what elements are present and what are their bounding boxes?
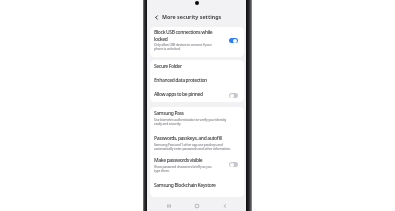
button[interactable]: Block USB connections while locked [150,27,244,57]
button[interactable]: Passwords, passkeys, and autofill [150,132,244,154]
button[interactable]: Home [186,199,208,211]
button[interactable]: Allow apps to be pinned [150,88,244,102]
staticText: Make passwords visible [154,157,203,164]
button[interactable]: Turn on [229,93,238,98]
staticText: Allow apps to be pinned [154,91,203,98]
button[interactable]: Navigate up [151,12,162,23]
staticText: easily and securely. [154,122,182,126]
button[interactable]: Samsung Pass [150,107,244,132]
button[interactable]: Secure Folder [150,60,244,74]
button[interactable]: Turn on [229,162,238,167]
button[interactable]: Samsung Blockchain Keystore [150,179,244,197]
staticText: Use biometric authentication to verify y… [154,118,227,122]
staticText: Only allow USB devices to connect if you… [154,43,212,47]
staticText: Secure Folder [154,63,182,70]
staticText: Enhanced data protection [154,77,207,84]
button[interactable]: Recent apps [158,199,180,211]
staticText: More security settings [162,13,222,20]
staticText: Samsung Blockchain Keystore [154,182,216,189]
staticText: automatically enter passwords and other … [154,147,231,151]
staticText: Show password characters briefly as you [154,165,212,169]
staticText: Samsung Pass and 1 other app use passkey… [154,143,223,147]
button[interactable]: Back [214,199,236,211]
staticText: Passwords, passkeys, and autofill [154,135,222,142]
staticText: Block USB connections while locked [154,29,213,42]
staticText: type them. [154,169,170,173]
staticText: Samsung Pass [154,110,184,117]
button[interactable]: Make passwords visible [150,154,244,179]
staticText: phone is unlocked. [154,47,181,51]
button[interactable]: Turn off [229,38,238,43]
button[interactable]: Enhanced data protection [150,74,244,88]
